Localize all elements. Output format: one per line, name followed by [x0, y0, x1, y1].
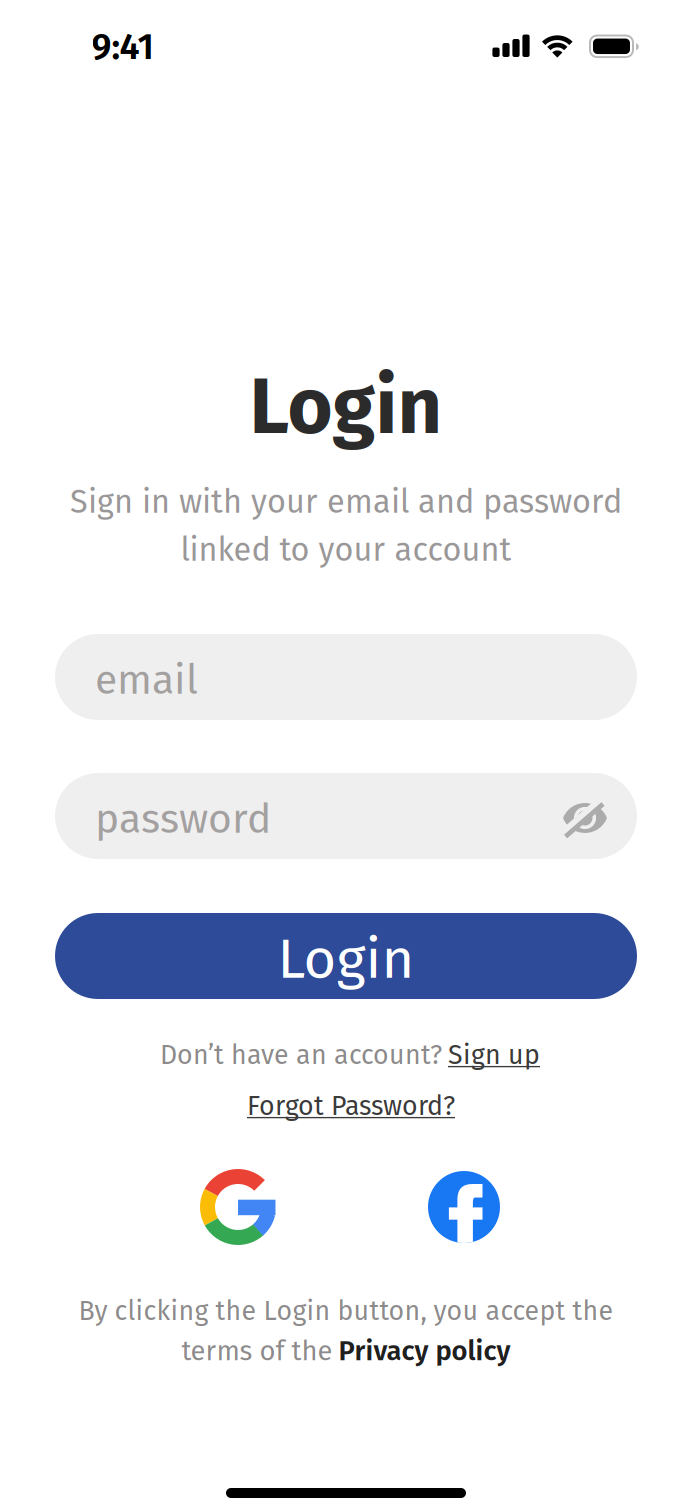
- button[interactable]: email: [55, 634, 637, 720]
- staticText: password: [95, 794, 271, 843]
- staticText: Sign up: [448, 1039, 540, 1071]
- staticText: Sign in with your email and password: [70, 483, 622, 521]
- staticText: Don’t have an account?: [160, 1039, 442, 1071]
- button[interactable]: password: [55, 773, 637, 859]
- button[interactable]: [198, 1167, 278, 1247]
- staticText: Privacy policy: [338, 1335, 510, 1367]
- button[interactable]: Sign up: [448, 1039, 540, 1071]
- staticText: By clicking the Login button, you accept…: [78, 1295, 613, 1327]
- staticText: Login: [249, 361, 442, 453]
- staticText: Forgot Password?: [247, 1090, 455, 1122]
- button[interactable]: Login: [55, 913, 637, 999]
- staticText: email: [95, 655, 198, 704]
- button[interactable]: [428, 1171, 500, 1243]
- button[interactable]: [562, 795, 608, 841]
- button[interactable]: Privacy policy: [338, 1335, 510, 1367]
- staticText: terms of the: [181, 1335, 332, 1367]
- staticText: 9:41: [91, 25, 153, 69]
- staticText: Login: [277, 925, 414, 993]
- staticText: linked to your account: [180, 531, 511, 569]
- button[interactable]: Forgot Password?: [247, 1090, 455, 1122]
